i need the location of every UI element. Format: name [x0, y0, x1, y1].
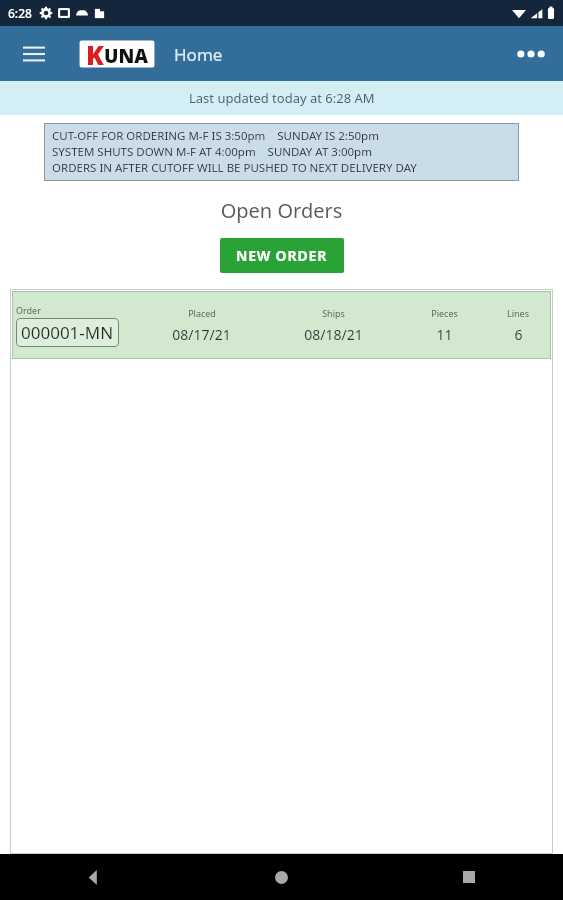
- staticText: Open Orders: [0, 197, 563, 224]
- staticText: Last updated today at 6:28 AM: [189, 89, 375, 107]
- staticText: 11: [436, 325, 453, 344]
- button[interactable]: Home: [187, 854, 375, 900]
- staticText: 08/17/21: [172, 325, 231, 344]
- button[interactable]: Recent apps: [375, 854, 563, 900]
- staticText: Ships: [322, 307, 345, 319]
- button[interactable]: Open navigation menu: [10, 30, 58, 78]
- staticText: Order: [16, 304, 41, 316]
- staticText: Home: [174, 43, 223, 66]
- staticText: Pieces: [431, 307, 458, 319]
- staticText: Lines: [507, 307, 529, 319]
- staticText: 6:28: [8, 5, 32, 21]
- staticText: CUT-OFF FOR ORDERING M-F IS 3:50pm SUNDA…: [52, 128, 379, 144]
- staticText: K: [86, 37, 104, 71]
- staticText: Placed: [188, 307, 216, 319]
- staticText: SYSTEM SHUTS DOWN M-F AT 4:00pm SUNDAY A…: [52, 144, 372, 160]
- staticText: 000001-MN: [21, 321, 114, 344]
- button[interactable]: Order: [12, 291, 551, 359]
- staticText: 08/18/21: [304, 325, 363, 344]
- button[interactable]: NEW ORDER: [220, 238, 344, 273]
- staticText: NEW ORDER: [236, 246, 328, 265]
- staticText: 6: [514, 325, 523, 344]
- staticText: UNA: [104, 43, 149, 69]
- staticText: ORDERS IN AFTER CUTOFF WILL BE PUSHED TO…: [52, 160, 417, 176]
- button[interactable]: More options: [507, 30, 555, 78]
- button[interactable]: Back: [0, 854, 187, 900]
